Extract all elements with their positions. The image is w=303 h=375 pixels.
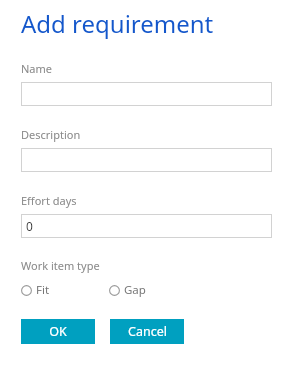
button[interactable]: Fit (21, 282, 109, 298)
staticText: Name (21, 61, 53, 76)
staticText: Fit (36, 282, 50, 298)
staticText: Cancel (128, 323, 167, 340)
button[interactable]: Gap (109, 282, 179, 298)
button[interactable]: OK (21, 319, 95, 344)
staticText: 0 (26, 218, 33, 234)
staticText: Description (21, 127, 81, 142)
staticText: Gap (124, 282, 146, 298)
button[interactable] (21, 82, 272, 106)
staticText: OK (49, 323, 67, 340)
button[interactable] (21, 148, 272, 172)
staticText: Effort days (21, 193, 77, 208)
staticText: Add requirement (21, 7, 214, 40)
button[interactable]: Cancel (110, 319, 184, 344)
button[interactable]: 0 (21, 214, 272, 238)
staticText: Work item type (21, 258, 100, 273)
